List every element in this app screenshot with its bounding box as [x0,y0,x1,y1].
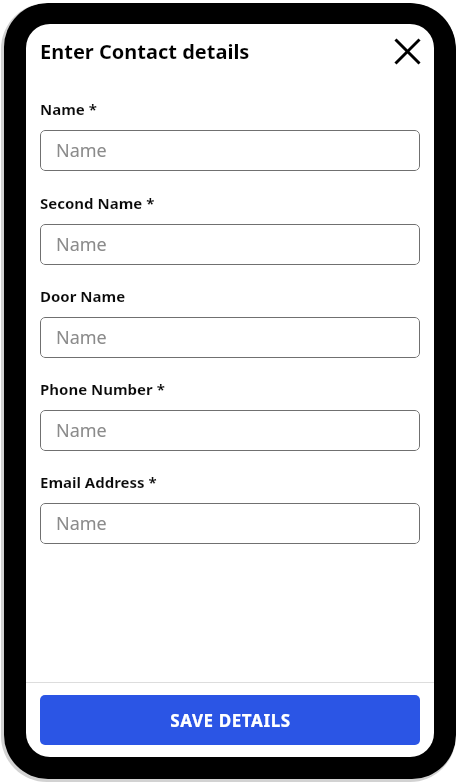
button[interactable]: Name [40,130,420,171]
button[interactable]: Name [40,410,420,451]
staticText: Name [56,232,107,257]
button[interactable]: Name [40,503,420,544]
staticText: Name [56,138,107,163]
staticText: Phone Number * [40,379,165,399]
staticText: Name * [40,99,97,119]
button[interactable]: Name [40,317,420,358]
staticText: Name [56,511,107,536]
staticText: SAVE DETAILS [170,709,291,732]
staticText: Name [56,418,107,443]
staticText: Second Name * [40,193,155,213]
staticText: Enter Contact details [40,38,250,65]
staticText: Name [56,325,107,350]
button[interactable]: Name [40,224,420,265]
button[interactable]: SAVE DETAILS [40,695,420,745]
button[interactable]: Close [387,31,427,71]
staticText: Door Name [40,286,126,306]
staticText: Email Address * [40,472,157,492]
